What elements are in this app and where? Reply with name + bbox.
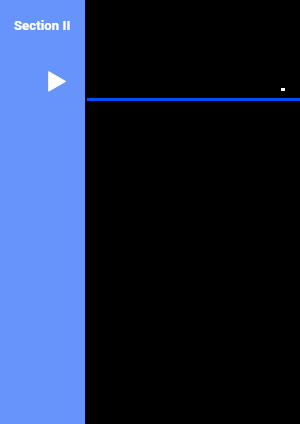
- button[interactable]: Play: [44, 66, 72, 96]
- staticText: Section II: [14, 18, 71, 33]
